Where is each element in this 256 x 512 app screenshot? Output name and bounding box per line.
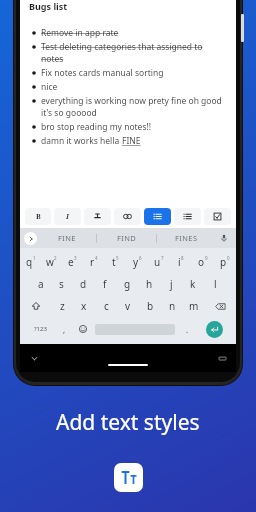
- staticText: Test deleting categories that assigned t…: [41, 41, 227, 65]
- staticText: Fix notes cards manual sorting: [41, 67, 164, 79]
- button[interactable]: v: [117, 295, 139, 317]
- staticText: nice: [41, 81, 58, 93]
- staticText: q: [26, 255, 33, 269]
- button[interactable]: a: [30, 273, 51, 295]
- staticText: d: [80, 277, 87, 291]
- button[interactable]: p: [214, 251, 236, 273]
- button[interactable]: f: [94, 273, 116, 295]
- staticText: m: [189, 299, 199, 313]
- staticText: 3: [74, 255, 77, 261]
- staticText: Remove in app rate: [41, 27, 119, 39]
- button[interactable]: b: [139, 295, 161, 317]
- button[interactable]: App icon: [114, 463, 143, 492]
- staticText: 1: [33, 255, 36, 261]
- staticText: .: [186, 324, 189, 335]
- staticText: l: [214, 277, 217, 291]
- button[interactable]: d: [72, 273, 94, 295]
- button[interactable]: Strikethrough: [84, 208, 111, 225]
- button[interactable]: Italic: [54, 208, 81, 225]
- staticText: x: [81, 299, 87, 313]
- button[interactable]: ?123: [24, 317, 56, 341]
- staticText: 5: [116, 255, 119, 261]
- button[interactable]: k: [182, 273, 204, 295]
- button[interactable]: Bulleted list: [144, 208, 171, 225]
- staticText: FIND: [117, 233, 137, 243]
- staticText: 7: [161, 255, 164, 261]
- button[interactable]: FIND: [97, 228, 156, 248]
- staticText: i: [178, 255, 181, 269]
- button[interactable]: w: [41, 251, 62, 273]
- button[interactable]: Numbered list: [174, 208, 201, 225]
- staticText: FINE: [58, 233, 76, 243]
- button[interactable]: Hide keyboard: [28, 352, 40, 364]
- staticText: h: [146, 277, 153, 291]
- button[interactable]: r: [83, 251, 104, 273]
- button[interactable]: Link: [114, 208, 141, 225]
- staticText: bro stop reading my notes!!: [41, 121, 152, 133]
- staticText: a: [38, 277, 44, 291]
- button[interactable]: .: [177, 317, 197, 341]
- staticText: 9: [205, 255, 208, 261]
- button[interactable]: s: [51, 273, 72, 295]
- button[interactable]: Emoji: [73, 317, 93, 341]
- button[interactable]: z: [51, 295, 73, 317]
- button[interactable]: t: [104, 251, 126, 273]
- staticText: f: [103, 277, 107, 291]
- button[interactable]: x: [73, 295, 95, 317]
- button[interactable]: m: [183, 295, 205, 317]
- staticText: y: [133, 255, 139, 269]
- button[interactable]: h: [138, 273, 160, 295]
- button[interactable]: y: [126, 251, 148, 273]
- staticText: FINE: [122, 135, 141, 147]
- staticText: j: [170, 277, 173, 291]
- staticText: I: [66, 212, 69, 222]
- button[interactable]: j: [160, 273, 182, 295]
- staticText: 4: [95, 255, 98, 261]
- button[interactable]: Enter: [206, 321, 223, 338]
- button[interactable]: Switch keyboard: [216, 352, 228, 364]
- staticText: t: [112, 255, 116, 269]
- button[interactable]: q: [20, 251, 41, 273]
- staticText: damn it works hella: [41, 135, 122, 147]
- staticText: s: [59, 277, 64, 291]
- staticText: r: [90, 255, 95, 269]
- staticText: Bugs list: [29, 0, 68, 12]
- staticText: 0: [227, 255, 230, 261]
- button[interactable]: Backspace: [205, 295, 236, 317]
- button[interactable]: n: [161, 295, 183, 317]
- button[interactable]: Shift: [20, 295, 51, 317]
- staticText: 8: [181, 255, 184, 261]
- button[interactable]: u: [148, 251, 170, 273]
- button[interactable]: ,: [56, 317, 73, 341]
- button[interactable]: l: [204, 273, 226, 295]
- button[interactable]: FINES: [157, 228, 216, 248]
- staticText: p: [220, 255, 227, 269]
- staticText: n: [169, 299, 176, 313]
- staticText: FINES: [175, 233, 198, 243]
- button[interactable]: Checklist: [204, 208, 231, 225]
- staticText: 2: [54, 255, 57, 261]
- staticText: e: [68, 255, 74, 269]
- staticText: B: [36, 212, 41, 222]
- staticText: Add text styles: [56, 408, 200, 437]
- staticText: v: [125, 299, 131, 313]
- button[interactable]: g: [116, 273, 138, 295]
- staticText: k: [190, 277, 196, 291]
- button[interactable]: e: [62, 251, 83, 273]
- button[interactable]: Expand toolbar: [24, 232, 37, 245]
- button[interactable]: FINE: [37, 228, 96, 248]
- staticText: g: [124, 277, 131, 291]
- staticText: ,: [63, 324, 66, 335]
- staticText: c: [104, 299, 109, 313]
- button[interactable]: o: [192, 251, 214, 273]
- button[interactable]: Voice input: [216, 228, 232, 248]
- button[interactable]: Bold: [25, 208, 51, 225]
- staticText: z: [60, 299, 65, 313]
- staticText: 6: [139, 255, 142, 261]
- button[interactable]: i: [170, 251, 192, 273]
- staticText: o: [198, 255, 205, 269]
- button[interactable]: c: [95, 295, 117, 317]
- staticText: b: [147, 299, 154, 313]
- staticText: everything is working now prety fine oh …: [41, 95, 227, 119]
